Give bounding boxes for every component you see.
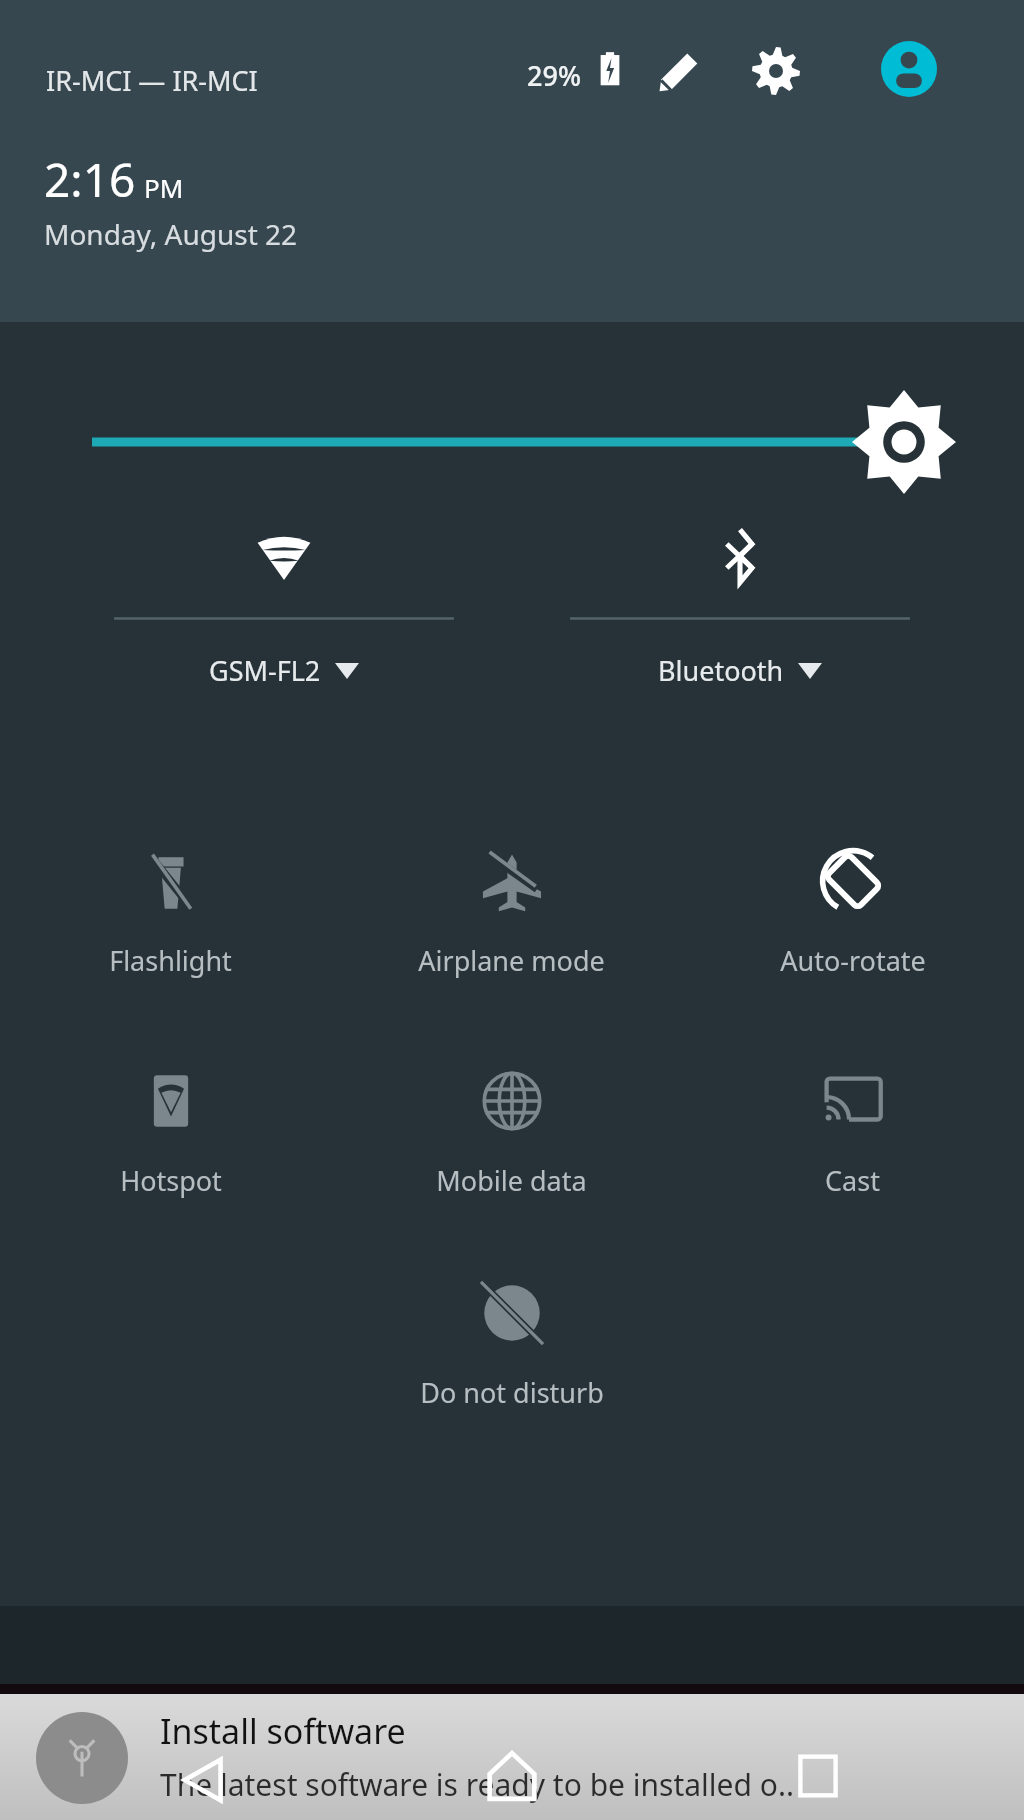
button[interactable]: Edit bbox=[650, 44, 706, 100]
staticText: Flashlight bbox=[109, 942, 232, 979]
button[interactable]: Home bbox=[474, 1738, 550, 1814]
staticText: Install software bbox=[160, 1708, 406, 1754]
button[interactable]: Hotspot bbox=[0, 1050, 341, 1250]
staticText: Mobile data bbox=[436, 1162, 587, 1199]
button[interactable]: Auto-rotate bbox=[682, 830, 1023, 1030]
staticText: The latest software is ready to be insta… bbox=[160, 1764, 794, 1805]
staticText: Monday, August 22 bbox=[44, 215, 298, 253]
staticText: 29% bbox=[527, 57, 581, 94]
staticText: Auto-rotate bbox=[780, 942, 926, 979]
staticText: Airplane mode bbox=[418, 942, 605, 979]
staticText: PM bbox=[144, 170, 184, 205]
button[interactable]: GSM-FL2 bbox=[56, 512, 512, 712]
staticText: Bluetooth bbox=[658, 652, 784, 689]
button[interactable]: Recent apps bbox=[780, 1738, 856, 1814]
button[interactable]: Install software bbox=[0, 1694, 1024, 1820]
button[interactable]: Cast bbox=[682, 1050, 1023, 1250]
button[interactable]: Flashlight bbox=[0, 830, 341, 1030]
button[interactable]: Mobile data bbox=[341, 1050, 682, 1250]
button[interactable]: Airplane mode bbox=[341, 830, 682, 1030]
staticText: Cast bbox=[825, 1162, 880, 1199]
staticText: IR-MCI — IR-MCI bbox=[46, 62, 258, 99]
button[interactable]: Settings bbox=[745, 40, 807, 102]
staticText: GSM-FL2 bbox=[209, 652, 321, 689]
button[interactable]: Do not disturb bbox=[341, 1262, 682, 1462]
staticText: 2:16 bbox=[44, 148, 136, 211]
button[interactable]: Back bbox=[166, 1742, 242, 1818]
staticText: Do not disturb bbox=[420, 1374, 604, 1411]
button[interactable]: User profile bbox=[878, 38, 940, 100]
staticText: Hotspot bbox=[120, 1162, 222, 1199]
button[interactable]: Brightness bbox=[60, 382, 964, 502]
button[interactable]: Battery charging bbox=[592, 50, 628, 86]
button[interactable]: Bluetooth bbox=[512, 512, 968, 712]
